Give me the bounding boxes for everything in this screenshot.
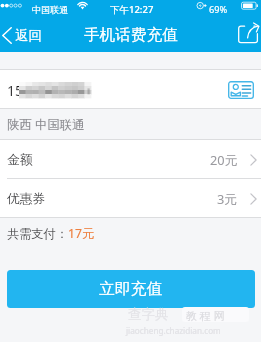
staticText: 返回: [15, 27, 42, 44]
button[interactable]: 返回: [0, 22, 50, 49]
staticText: 17元: [68, 225, 95, 242]
staticText: 立即充值: [99, 279, 163, 299]
staticText: 陕西 中国联通: [7, 116, 85, 133]
staticText: 查字典: [128, 306, 169, 323]
button[interactable]: 立即充值: [7, 270, 255, 308]
staticText: 69%: [209, 3, 228, 16]
staticText: 优惠券: [7, 191, 46, 207]
staticText: 20元: [210, 151, 238, 168]
staticText: 共需支付：: [7, 226, 68, 241]
button[interactable]: Share: [235, 21, 261, 49]
staticText: 教 程 网: [186, 308, 225, 323]
staticText: 中国联通: [32, 4, 68, 15]
staticText: jiaocheng.chazidian.com: [126, 325, 221, 336]
staticText: 下午12:27: [110, 3, 154, 16]
staticText: 手机话费充值: [84, 25, 178, 45]
button[interactable]: Choose contact: [228, 81, 254, 99]
staticText: 3元: [217, 190, 238, 207]
button[interactable]: 优惠券: [0, 179, 261, 218]
button[interactable]: 金额: [0, 140, 261, 179]
staticText: 金额: [7, 152, 33, 168]
staticText: 15: [7, 81, 24, 100]
